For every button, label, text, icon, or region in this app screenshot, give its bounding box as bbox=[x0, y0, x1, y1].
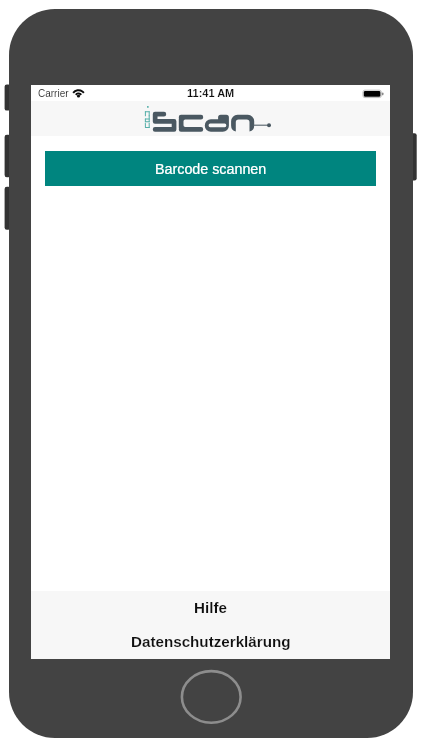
button[interactable]: Datenschutzerklärung bbox=[31, 623, 390, 659]
staticText: 11:41 AM bbox=[187, 87, 235, 99]
staticText: Datenschutzerklärung bbox=[131, 633, 291, 650]
staticText: Carrier bbox=[38, 88, 69, 99]
staticText: Barcode scannen bbox=[155, 161, 267, 177]
button[interactable]: Hilfe bbox=[31, 591, 390, 623]
staticText: Hilfe bbox=[194, 599, 227, 616]
button[interactable]: Barcode scannen bbox=[45, 151, 376, 186]
